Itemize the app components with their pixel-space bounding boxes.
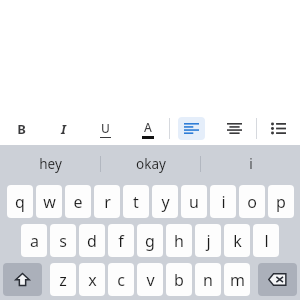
button[interactable]: k (224, 224, 250, 257)
button[interactable]: z (50, 263, 76, 296)
button[interactable]: c (108, 263, 134, 296)
staticText: h (174, 230, 184, 252)
staticText: B (17, 120, 26, 138)
button[interactable]: n (195, 263, 221, 296)
staticText: d (87, 230, 97, 252)
staticText: k (233, 230, 242, 252)
button[interactable]: s (50, 224, 76, 257)
button[interactable]: l (253, 224, 279, 257)
button[interactable]: m (224, 263, 250, 296)
staticText: u (189, 191, 199, 213)
button[interactable]: Shift (3, 263, 42, 296)
button[interactable]: q (7, 185, 33, 218)
button[interactable]: p (268, 185, 294, 218)
button[interactable]: x (79, 263, 105, 296)
button[interactable]: r (94, 185, 120, 218)
button[interactable]: b (166, 263, 192, 296)
staticText: r (104, 191, 111, 213)
staticText: f (118, 230, 124, 252)
staticText: p (276, 191, 286, 213)
staticText: g (145, 230, 155, 252)
button[interactable]: Backspace (258, 263, 297, 296)
button[interactable]: e (65, 185, 91, 218)
button[interactable]: d (79, 224, 105, 257)
button[interactable]: t (123, 185, 149, 218)
staticText: c (117, 269, 125, 291)
staticText: s (59, 230, 67, 252)
staticText: j (206, 230, 211, 252)
button[interactable]: w (36, 185, 62, 218)
staticText: i (221, 191, 226, 213)
staticText: t (133, 191, 139, 213)
staticText: l (264, 230, 269, 252)
button[interactable]: okay (101, 145, 200, 182)
button[interactable]: Bulleted list (257, 111, 300, 145)
staticText: U (101, 120, 110, 136)
button[interactable]: Italic (42, 111, 84, 145)
button[interactable]: u (181, 185, 207, 218)
button[interactable]: Align left (170, 111, 213, 145)
staticText: a (30, 230, 39, 252)
button[interactable]: a (21, 224, 47, 257)
button[interactable]: Align center (213, 111, 256, 145)
button[interactable]: v (137, 263, 163, 296)
button[interactable]: i (210, 185, 236, 218)
button[interactable]: Bold (0, 111, 42, 145)
staticText: o (247, 191, 257, 213)
button[interactable]: o (239, 185, 265, 218)
button[interactable]: f (108, 224, 134, 257)
staticText: i (249, 155, 253, 173)
staticText: y (161, 191, 170, 213)
staticText: x (88, 269, 97, 291)
staticText: v (146, 269, 155, 291)
button[interactable]: hey (0, 145, 100, 182)
button[interactable]: Underline (84, 111, 126, 145)
button[interactable]: y (152, 185, 178, 218)
staticText: q (15, 191, 25, 213)
button[interactable]: Text color (126, 111, 169, 145)
button[interactable]: h (166, 224, 192, 257)
staticText: w (43, 191, 56, 213)
staticText: m (230, 269, 245, 291)
staticText: I (61, 120, 66, 138)
staticText: b (174, 269, 184, 291)
button[interactable]: i (201, 145, 300, 182)
staticText: n (203, 269, 213, 291)
staticText: hey (39, 155, 62, 173)
staticText: e (73, 191, 83, 213)
button[interactable]: j (195, 224, 221, 257)
button[interactable]: g (137, 224, 163, 257)
staticText: okay (136, 155, 166, 173)
staticText: A (144, 119, 152, 135)
staticText: z (59, 269, 67, 291)
